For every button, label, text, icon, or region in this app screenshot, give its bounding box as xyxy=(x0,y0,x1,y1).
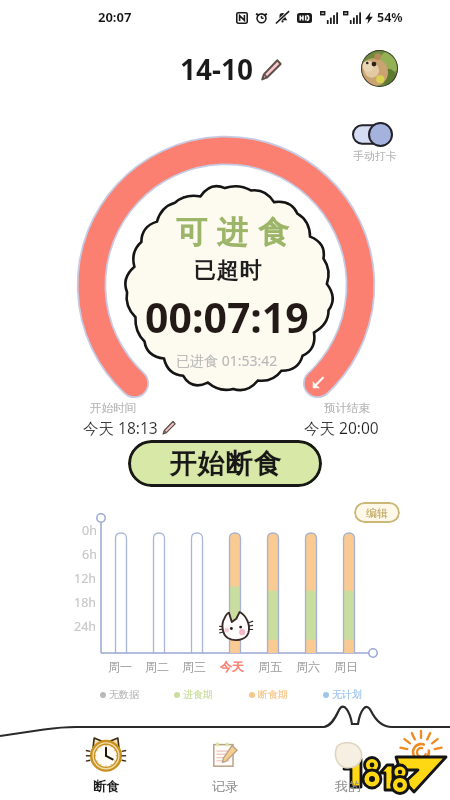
staticText: 14-10 xyxy=(180,50,254,88)
button[interactable]: 预计结束 xyxy=(304,401,379,438)
staticText: 周二 xyxy=(145,659,169,674)
button[interactable]: 开始时间 xyxy=(83,401,176,438)
staticText: 无计划 xyxy=(332,688,362,701)
staticText: 6h xyxy=(82,546,97,563)
staticText: 今天 xyxy=(220,659,244,674)
staticText: 周三 xyxy=(182,659,206,674)
button[interactable]: 开始断食 xyxy=(128,440,322,487)
staticText: 记录 xyxy=(212,778,238,794)
button[interactable]: 我的 xyxy=(316,735,380,794)
staticText: 今天 20:00 xyxy=(304,417,379,438)
staticText: 我的 xyxy=(335,778,361,794)
staticText: 周一 xyxy=(108,659,132,674)
staticText: 可进食 xyxy=(171,213,294,252)
staticText: 18h xyxy=(74,594,97,611)
staticText: 20:07 xyxy=(98,8,132,26)
staticText: 54% xyxy=(377,9,403,26)
staticText: 已进食 01:53:42 xyxy=(176,351,278,370)
button[interactable]: 14-10 xyxy=(180,50,282,88)
staticText: 手动打卡 xyxy=(353,149,397,163)
staticText: 开始断食 xyxy=(169,447,281,481)
button[interactable]: 记录 xyxy=(193,735,257,794)
staticText: 周五 xyxy=(258,659,282,674)
staticText: 断食 xyxy=(93,778,119,794)
staticText: 无数据 xyxy=(109,688,139,701)
button[interactable]: 无计划 xyxy=(323,688,362,701)
staticText: 已超时 xyxy=(193,257,262,285)
staticText: 12h xyxy=(74,570,97,587)
button[interactable]: 进食期 xyxy=(174,688,213,701)
button[interactable]: Manual check in toggle xyxy=(353,123,392,146)
staticText: 今天 18:13 xyxy=(83,417,158,438)
button[interactable]: 断食 xyxy=(74,735,138,794)
staticText: 周日 xyxy=(334,659,358,674)
button[interactable]: 编辑 xyxy=(354,502,400,523)
staticText: 00:07:19 xyxy=(145,289,309,345)
staticText: 0h xyxy=(82,522,97,539)
button[interactable]: 断食期 xyxy=(249,688,288,701)
staticText: 编辑 xyxy=(366,506,388,520)
staticText: 断食期 xyxy=(258,688,288,701)
staticText: 24h xyxy=(74,618,97,635)
staticText: 进食期 xyxy=(183,688,213,701)
staticText: 周六 xyxy=(296,659,320,674)
button[interactable]: Profile xyxy=(361,50,398,87)
button[interactable]: 无数据 xyxy=(100,688,139,701)
staticText: 预计结束 xyxy=(324,401,370,415)
staticText: 开始时间 xyxy=(90,401,136,415)
